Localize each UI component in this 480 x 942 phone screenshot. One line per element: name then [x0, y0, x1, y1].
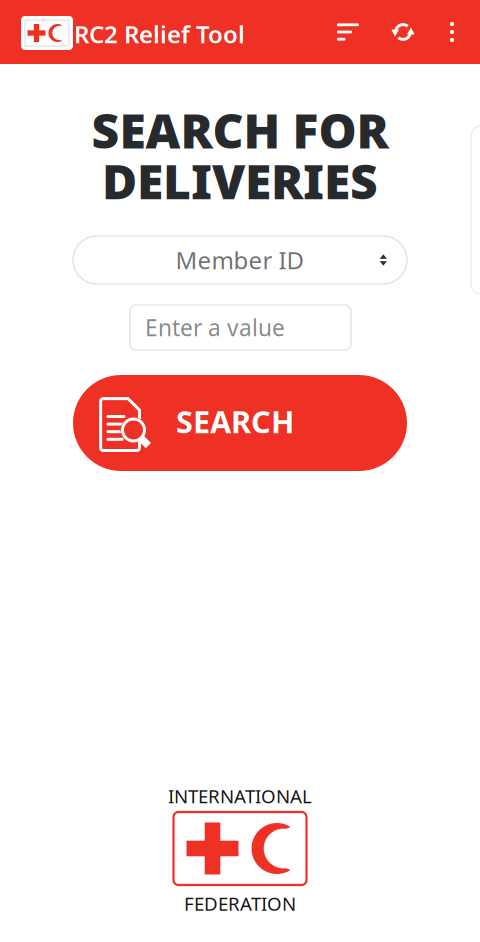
button[interactable]: More options	[432, 8, 472, 56]
button[interactable]: Member ID	[73, 236, 407, 284]
staticText: DELIVERIES	[102, 149, 378, 212]
staticText: FEDERATION	[184, 891, 296, 916]
staticText: SEARCH	[176, 401, 294, 442]
button[interactable]: Sync	[379, 8, 427, 56]
button[interactable]: Enter a value	[130, 305, 351, 350]
staticText: INTERNATIONAL	[168, 784, 312, 808]
staticText: RC2 Relief Tool	[74, 18, 245, 50]
staticText: Enter a value	[145, 312, 285, 342]
staticText: Member ID	[175, 244, 304, 276]
button[interactable]: SEARCH	[73, 375, 407, 471]
staticText: SEARCH FOR	[91, 98, 388, 162]
button[interactable]: Sort	[324, 8, 372, 56]
